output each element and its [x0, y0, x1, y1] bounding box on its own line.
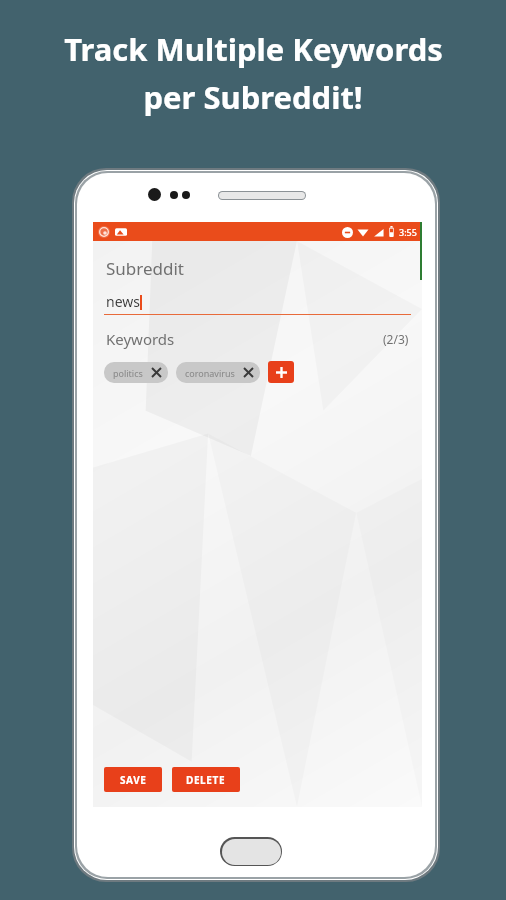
- button[interactable]: SAVE: [104, 767, 162, 792]
- staticText: DELETE: [186, 773, 226, 787]
- button[interactable]: news: [104, 292, 411, 315]
- staticText: coronavirus: [185, 367, 235, 379]
- button[interactable]: politics: [104, 362, 168, 383]
- button[interactable]: Add keyword: [268, 361, 294, 383]
- staticText: Keywords: [106, 329, 175, 349]
- staticText: news: [106, 292, 140, 311]
- staticText: SAVE: [120, 773, 147, 787]
- staticText: politics: [113, 367, 143, 379]
- button[interactable]: DELETE: [172, 767, 240, 792]
- staticText: Track Multiple Keywords: [64, 28, 443, 70]
- button[interactable]: coronavirus: [176, 362, 260, 383]
- staticText: per Subreddit!: [143, 76, 363, 118]
- staticText: 3:55: [399, 226, 417, 238]
- staticText: Subreddit: [106, 257, 184, 280]
- staticText: (2/3): [383, 331, 409, 347]
- button[interactable]: Home: [220, 837, 282, 866]
